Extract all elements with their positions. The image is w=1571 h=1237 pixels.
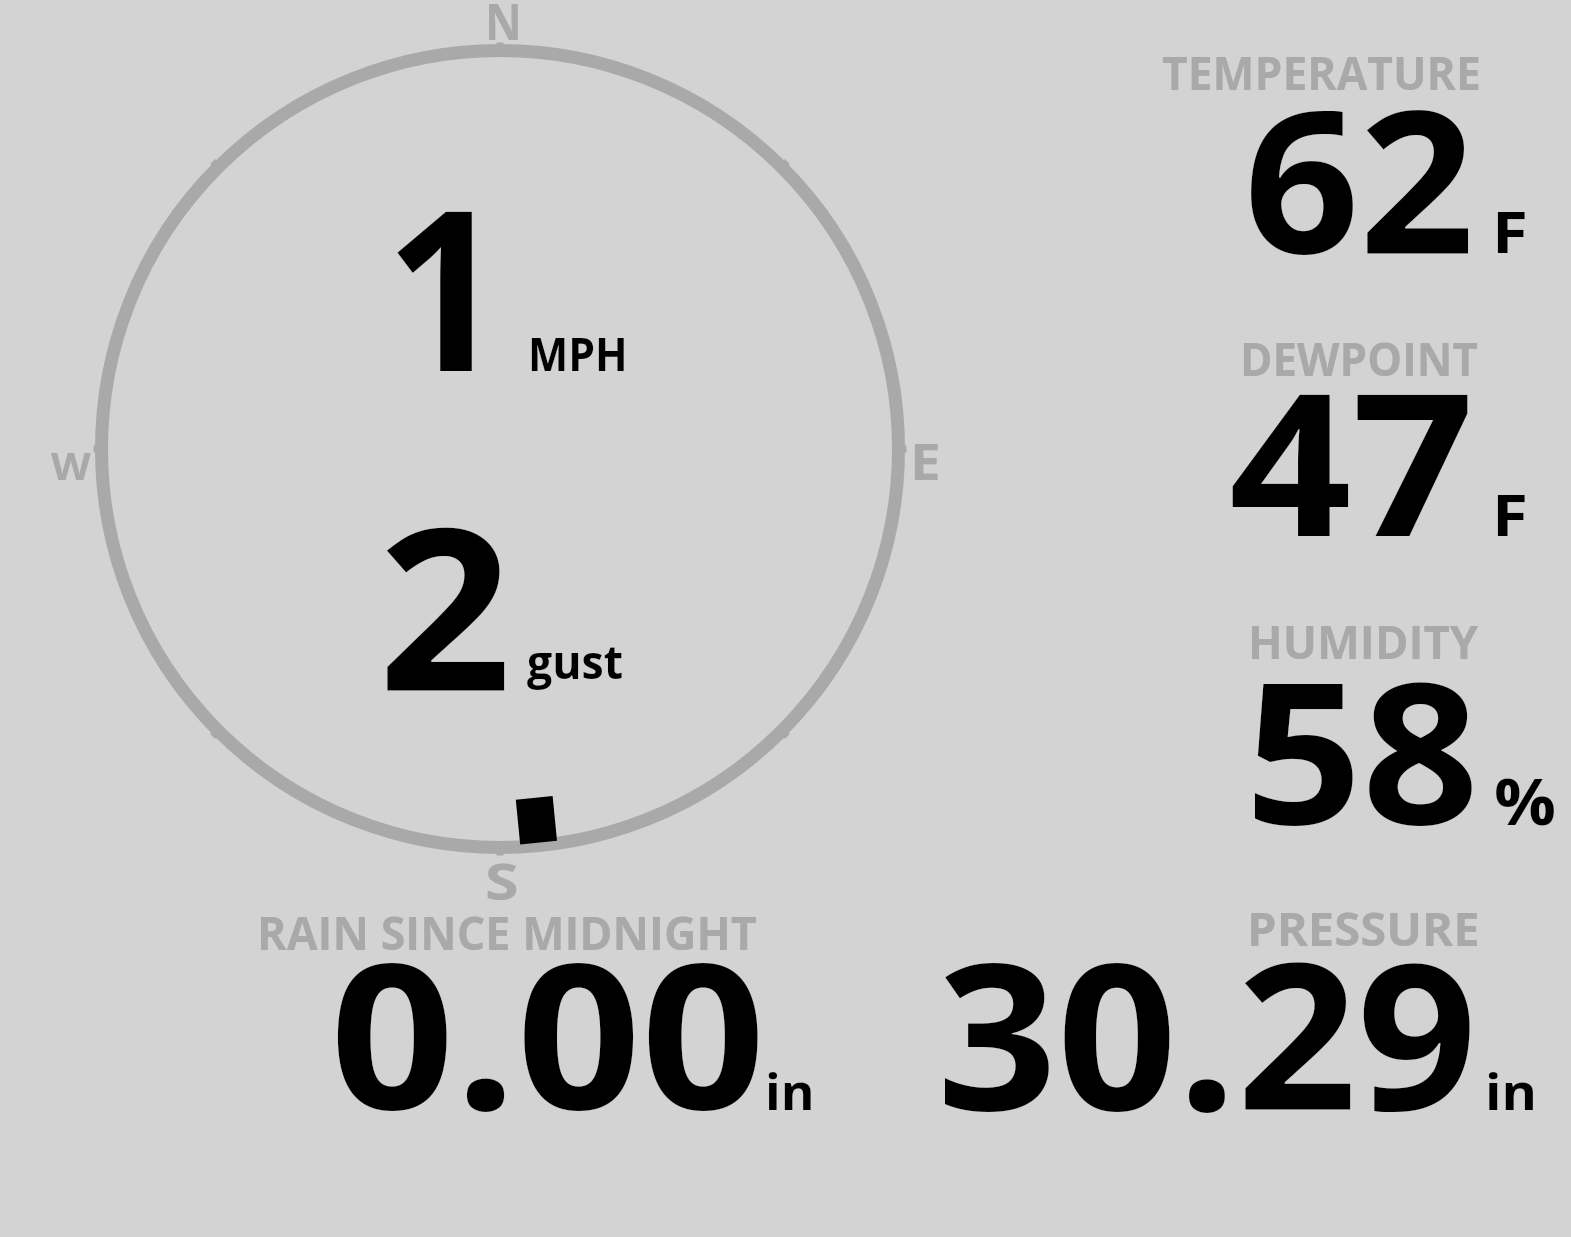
staticText: in	[765, 1057, 815, 1125]
staticText: F	[1492, 191, 1528, 270]
staticText: in	[1485, 1057, 1538, 1125]
staticText: PRESSURE	[1247, 897, 1480, 960]
staticText: W	[51, 439, 91, 491]
staticText: 58	[1245, 616, 1479, 882]
button[interactable]: Wind 1 miles per hour, gusting 2	[40, 0, 960, 900]
staticText: TEMPERATURE	[1162, 41, 1482, 104]
staticText: 62	[1244, 42, 1475, 310]
staticText: S	[485, 847, 519, 915]
staticText: MPH	[528, 322, 628, 385]
button[interactable]: Dewpoint 47 degrees Fahrenheit	[1100, 320, 1540, 580]
staticText: %	[1494, 756, 1556, 845]
staticText: gust	[527, 630, 624, 693]
staticText: RAIN SINCE MIDNIGHT	[257, 901, 758, 964]
staticText: 30.29	[937, 893, 1478, 1169]
staticText: 0.00	[330, 893, 767, 1168]
staticText: 47	[1229, 325, 1475, 593]
staticText: N	[485, 0, 522, 55]
button[interactable]: Pressure 30.29 inches	[900, 890, 1560, 1130]
button[interactable]: Rain since midnight 0.00 inches	[240, 890, 840, 1130]
staticText: F	[1492, 474, 1528, 553]
staticText: 1	[385, 134, 505, 436]
staticText: HUMIDITY	[1248, 610, 1479, 673]
staticText: DEWPOINT	[1240, 327, 1479, 390]
button[interactable]: Temperature 62 degrees Fahrenheit	[1100, 40, 1540, 300]
button[interactable]: Humidity 58 percent	[1100, 600, 1540, 860]
staticText: 2	[378, 450, 512, 756]
staticText: E	[910, 427, 942, 495]
